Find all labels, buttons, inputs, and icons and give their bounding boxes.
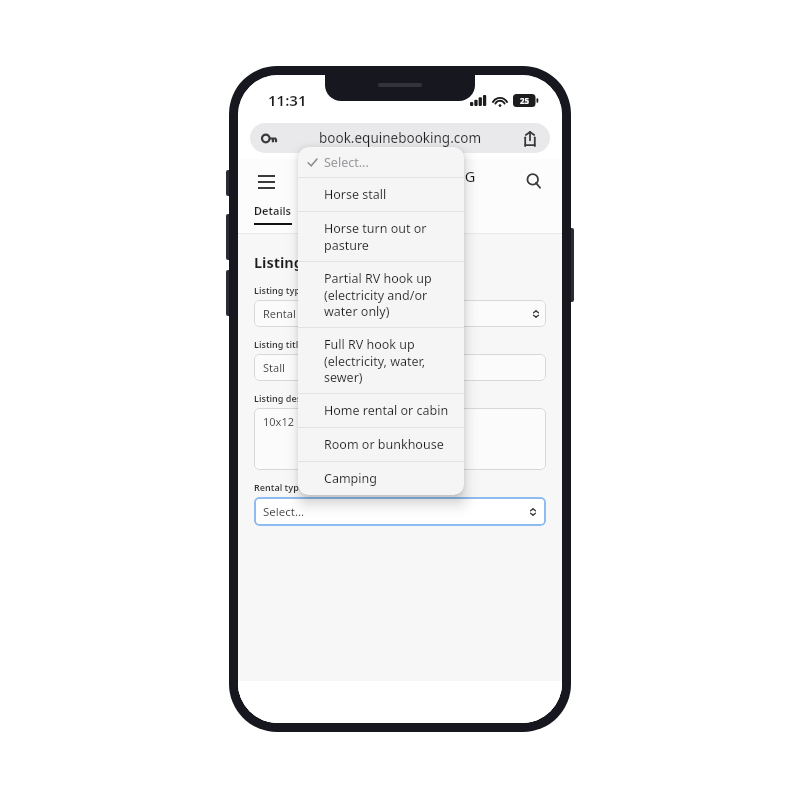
staticText: Stall [263,360,285,375]
staticText: Listing details [254,252,356,272]
staticText: Hotels and adventures [333,184,417,194]
staticText: Full RV hook up (electricity, water, sew… [324,336,454,385]
button[interactable]: Full RV hook up (electricity, water, sew… [298,328,464,393]
staticText: Select... [324,154,369,171]
button[interactable]: Days b [404,300,546,327]
staticText: Listing type [254,284,306,296]
button[interactable]: Select... [254,497,546,526]
staticText: Horse turn out or pasture [324,220,454,253]
button[interactable]: Photos [396,203,433,218]
button[interactable]: Room or bunkhouse [298,428,464,461]
staticText: Room or bunkhouse [324,436,444,453]
other: Secure connection [262,134,276,143]
staticText: Details [254,203,292,218]
button[interactable]: Select... [298,147,464,177]
staticText: Listing description [254,392,336,404]
staticText: Horse stall [324,186,387,203]
staticText: Select... [263,504,305,520]
button[interactable]: book.equinebooking.com [250,123,550,153]
button[interactable]: Partial RV hook up (electricity and/or w… [298,262,464,327]
button[interactable]: Search [520,167,548,195]
button[interactable]: Share [520,128,540,148]
button[interactable]: Horse turn out or pasture [298,212,464,261]
staticText: Rental type [263,306,322,321]
staticText: 10x12 [263,414,294,429]
staticText: book.equinebooking.com [319,129,482,147]
staticText: Partial RV hook up (electricity and/or w… [324,270,454,319]
staticText: Listing title [254,338,304,350]
staticText: Camping [324,470,377,487]
staticText: 11:31 [268,90,307,110]
button[interactable]: Menu [252,167,280,195]
button[interactable]: 10x12 [254,408,546,470]
button[interactable]: Details [254,203,292,225]
button[interactable]: Camping [298,462,464,495]
staticText: Home rental or cabin [324,402,449,419]
button[interactable]: Amenities [318,203,370,218]
button[interactable]: Rental type [254,300,396,327]
button[interactable]: Stall [254,354,546,381]
staticText: Rental type [254,481,305,493]
button[interactable]: Home rental or cabin [298,394,464,427]
staticText: 25 [520,95,530,106]
staticText: EQUINE BOOKING [333,166,477,186]
button[interactable]: Horse stall [298,178,464,211]
